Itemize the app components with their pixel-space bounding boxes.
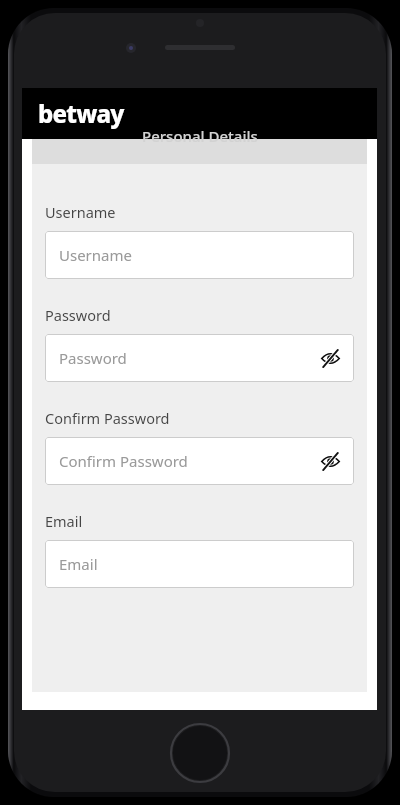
staticText: betway: [38, 97, 124, 130]
button[interactable]: Username: [45, 231, 354, 279]
button[interactable]: Password: [45, 334, 354, 382]
staticText: Confirm Password: [45, 408, 170, 428]
button[interactable]: Email: [45, 540, 354, 588]
staticText: Password: [45, 305, 111, 325]
staticText: Email: [59, 554, 344, 574]
staticText: Email: [45, 511, 83, 531]
staticText: Password: [59, 348, 316, 368]
staticText: Confirm Password: [59, 451, 316, 471]
button[interactable]: Confirm Password: [45, 437, 354, 485]
staticText: Username: [45, 202, 116, 222]
staticText: Personal Details: [142, 126, 258, 146]
button[interactable]: Show password: [316, 447, 344, 475]
button[interactable]: Show password: [316, 344, 344, 372]
staticText: Username: [59, 245, 344, 265]
button[interactable]: betway home: [32, 93, 130, 134]
